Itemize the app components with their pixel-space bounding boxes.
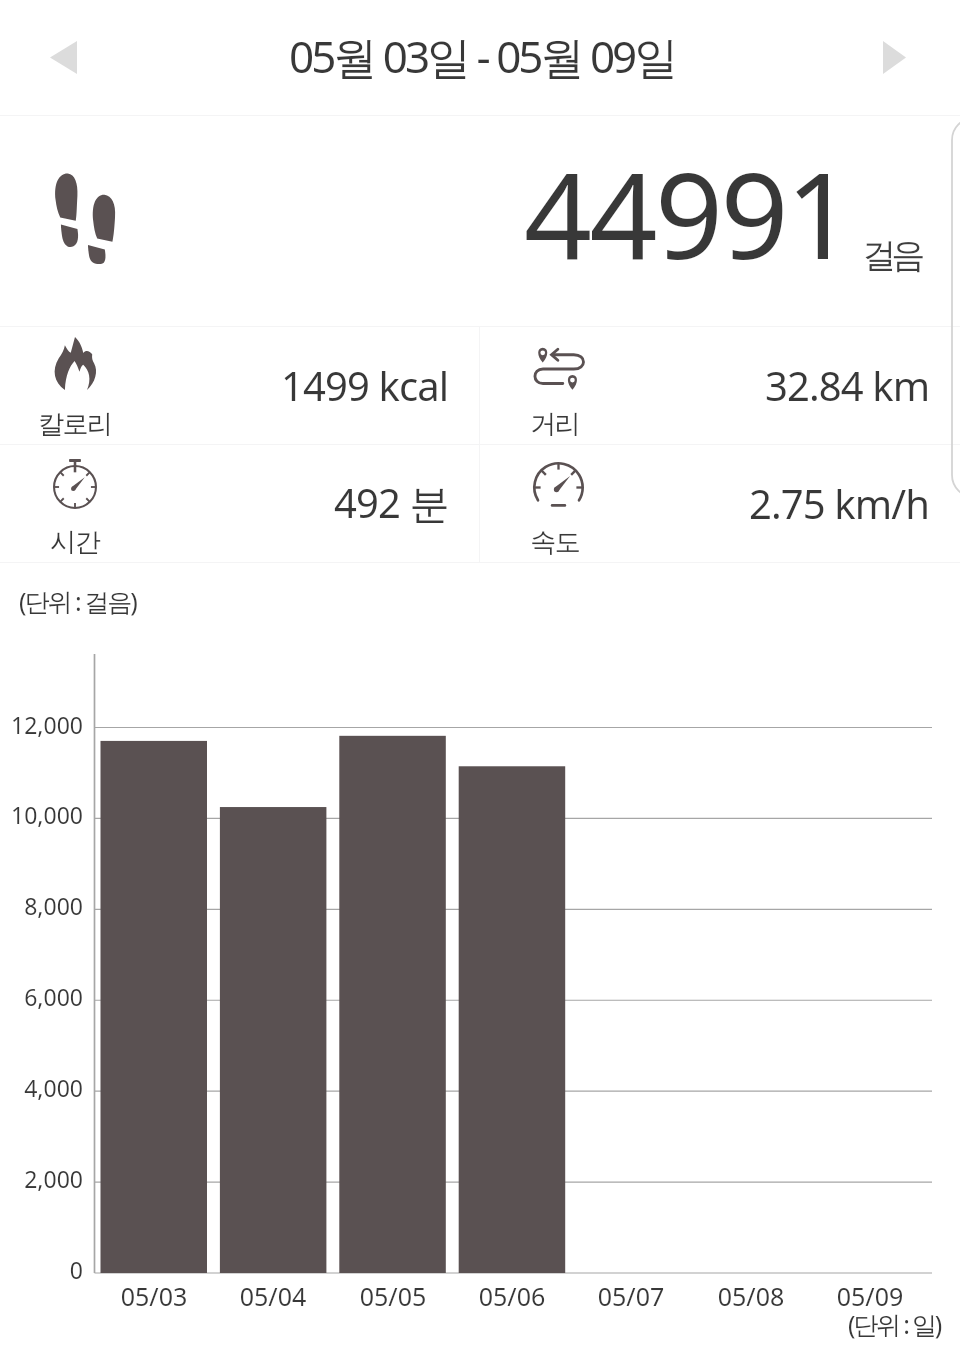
staticText: 2,000 bbox=[0, 1163, 83, 1194]
staticText: 6,000 bbox=[0, 981, 83, 1012]
button[interactable]: 칼로리 bbox=[0, 327, 479, 444]
button[interactable]: 거리 bbox=[480, 327, 960, 444]
staticText: 492 분 bbox=[334, 475, 449, 530]
staticText: 칼로리 bbox=[38, 408, 112, 441]
button[interactable]: 44991 bbox=[0, 116, 960, 326]
staticText: 05/03 bbox=[94, 1279, 214, 1313]
staticText: 05/08 bbox=[691, 1279, 811, 1313]
staticText: 10,000 bbox=[0, 799, 83, 830]
staticText: 8,000 bbox=[0, 890, 83, 921]
button[interactable]: Next week bbox=[861, 24, 927, 90]
staticText: 32.84 km bbox=[765, 358, 930, 412]
staticText: 05/04 bbox=[213, 1279, 333, 1313]
staticText: 05/06 bbox=[452, 1279, 572, 1313]
button[interactable]: 시간 bbox=[0, 445, 479, 562]
button[interactable]: 속도 bbox=[480, 445, 960, 562]
staticText: (단위 : 걸음) bbox=[19, 584, 136, 618]
staticText: 거리 bbox=[531, 408, 580, 441]
staticText: 4,000 bbox=[0, 1072, 83, 1103]
staticText: (단위 : 일) bbox=[848, 1307, 941, 1341]
button[interactable]: (단위 : 걸음) bbox=[0, 563, 960, 1363]
staticText: 05/07 bbox=[571, 1279, 691, 1313]
staticText: 속도 bbox=[531, 526, 580, 559]
staticText: 시간 bbox=[51, 526, 100, 559]
button[interactable]: Previous week bbox=[30, 24, 96, 90]
staticText: 05/05 bbox=[333, 1279, 453, 1313]
staticText: 12,000 bbox=[0, 709, 83, 740]
staticText: 05/09 bbox=[810, 1279, 930, 1313]
staticText: 1499 kcal bbox=[281, 358, 449, 412]
staticText: 2.75 km/h bbox=[749, 476, 930, 530]
staticText: 44991 bbox=[524, 132, 852, 294]
staticText: 걸음 bbox=[865, 234, 923, 277]
staticText: 0 bbox=[0, 1254, 83, 1285]
staticText: 05월 03일 - 05월 09일 bbox=[289, 26, 676, 86]
